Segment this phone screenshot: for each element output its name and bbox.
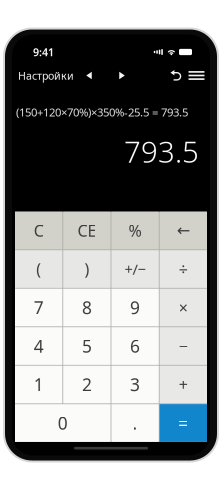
button[interactable]: = [160, 404, 207, 442]
staticText: 4 [34, 334, 44, 357]
button[interactable]: ÷ [160, 250, 207, 288]
button[interactable]: Undo [169, 64, 183, 86]
button[interactable]: 2 [63, 366, 111, 403]
button[interactable]: Настройки [13, 64, 79, 86]
staticText: = [178, 411, 188, 434]
staticText: (150+120×70%)×350%-25.5 = 793.5 [16, 104, 188, 120]
button[interactable]: 7 [15, 289, 62, 326]
button[interactable]: C [15, 212, 62, 249]
staticText: ) [84, 258, 89, 280]
staticText: 6 [130, 334, 140, 357]
button[interactable]: + [160, 366, 207, 403]
button[interactable]: Next [113, 64, 131, 86]
button[interactable]: 1 [15, 366, 62, 403]
staticText: C [34, 220, 44, 241]
staticText: % [129, 220, 142, 241]
button[interactable]: ← [160, 212, 207, 249]
button[interactable]: . [111, 404, 159, 442]
staticText: 5 [82, 334, 92, 357]
button[interactable]: CE [63, 212, 111, 249]
button[interactable]: 3 [111, 366, 159, 403]
staticText: ( [36, 258, 41, 280]
button[interactable]: 9 [111, 289, 159, 326]
staticText: + [179, 374, 188, 395]
staticText: Настройки [18, 68, 74, 83]
staticText: 9 [130, 296, 140, 319]
staticText: − [179, 335, 188, 357]
staticText: CE [77, 220, 96, 241]
staticText: 8 [82, 296, 92, 319]
button[interactable]: % [111, 212, 159, 249]
button[interactable]: 5 [63, 327, 111, 365]
staticText: 1 [34, 373, 44, 396]
staticText: 2 [82, 373, 92, 396]
button[interactable]: Menu [187, 64, 206, 86]
button[interactable]: − [160, 327, 207, 365]
staticText: +/− [125, 259, 146, 279]
staticText: . [133, 411, 138, 434]
button[interactable]: ) [63, 250, 111, 288]
button[interactable]: 0 [15, 404, 111, 442]
staticText: ÷ [179, 258, 188, 280]
staticText: 793.5 [124, 132, 199, 171]
staticText: 0 [58, 411, 68, 434]
button[interactable]: 8 [63, 289, 111, 326]
staticText: × [179, 297, 188, 318]
button[interactable]: 6 [111, 327, 159, 365]
button[interactable]: 4 [15, 327, 62, 365]
button[interactable]: +/− [111, 250, 159, 288]
staticText: ← [177, 221, 190, 240]
button[interactable]: × [160, 289, 207, 326]
button[interactable]: ( [15, 250, 62, 288]
staticText: 7 [34, 296, 44, 319]
button[interactable]: Previous [80, 64, 98, 86]
staticText: 3 [130, 373, 140, 396]
staticText: 9:41 [33, 45, 54, 59]
